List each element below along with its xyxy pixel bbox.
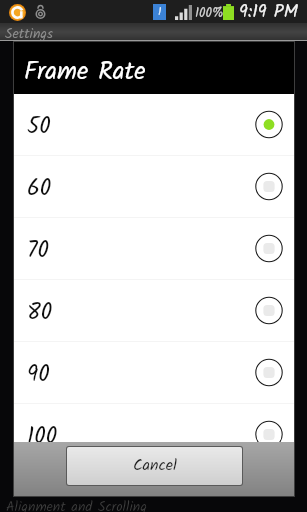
other: Notification <box>9 4 26 21</box>
button[interactable]: 60 <box>14 156 294 218</box>
button[interactable]: 100 <box>14 404 294 442</box>
button[interactable]: Cancel <box>67 447 242 485</box>
staticText: 50 <box>27 109 51 146</box>
staticText: Settings <box>5 23 53 41</box>
staticText: 90 <box>27 357 50 394</box>
staticText: Alignment and Scrolling <box>6 496 147 512</box>
staticText: 1 <box>158 3 162 19</box>
button[interactable]: 70 <box>14 218 294 280</box>
staticText: 100 <box>27 419 58 442</box>
staticText: 80 <box>27 295 53 332</box>
button[interactable]: 50 <box>14 94 294 156</box>
staticText: 9:19 PM <box>239 0 298 21</box>
button[interactable]: 90 <box>14 342 294 404</box>
staticText: Cancel <box>133 453 177 479</box>
other: Screen lock <box>36 5 45 19</box>
staticText: Frame Rate <box>24 52 146 92</box>
staticText: 60 <box>27 171 52 208</box>
staticText: 100% <box>195 3 224 24</box>
staticText: 70 <box>27 233 50 270</box>
button[interactable]: 80 <box>14 280 294 342</box>
